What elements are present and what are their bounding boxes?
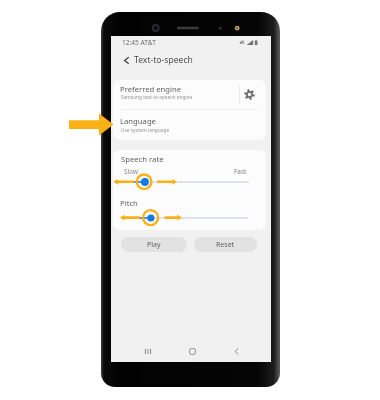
staticText: 12:45 AT&T [122, 38, 156, 47]
staticText: Preferred engine [120, 84, 182, 94]
staticText: Slow [124, 167, 138, 176]
button[interactable]: Language [113, 110, 266, 140]
button[interactable]: Recent apps [135, 341, 159, 362]
staticText: Use system language [121, 127, 170, 134]
button[interactable]: Home [180, 341, 204, 362]
button[interactable]: Back [224, 341, 248, 362]
staticText: Reset [216, 240, 235, 250]
staticText: Speech rate [121, 154, 164, 164]
staticText: Play [147, 240, 161, 250]
button[interactable]: Preferred engine [113, 80, 266, 109]
staticText: Samsung text-to-speech engine [121, 94, 193, 101]
button[interactable]: Speech rate [113, 176, 255, 188]
staticText: Fast [234, 167, 247, 176]
staticText: Text-to-speech [134, 54, 193, 66]
button[interactable]: Play [121, 237, 187, 252]
staticText: Pitch [120, 198, 138, 208]
button[interactable]: Reset [194, 237, 257, 252]
staticText: Language [120, 116, 156, 126]
button[interactable]: Preferred engine settings [237, 80, 261, 109]
button[interactable]: Navigate up [119, 49, 134, 72]
button[interactable]: Pitch [117, 212, 254, 224]
